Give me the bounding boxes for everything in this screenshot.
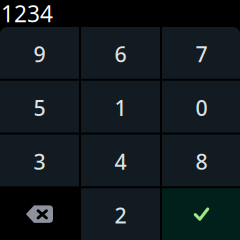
staticText: 8	[195, 147, 207, 175]
button[interactable]: Delete	[0, 188, 79, 240]
button[interactable]: 7	[162, 27, 240, 79]
staticText: 7	[195, 40, 207, 68]
staticText: 5	[33, 93, 45, 122]
button[interactable]: 8	[162, 134, 240, 186]
staticText: 1234	[1, 0, 53, 29]
button[interactable]: 6	[81, 27, 160, 79]
staticText: 6	[114, 40, 126, 68]
button[interactable]: 0	[162, 81, 240, 133]
staticText: 0	[195, 93, 207, 122]
button[interactable]: 4	[81, 134, 160, 186]
button[interactable]: Enter	[162, 188, 240, 240]
staticText: 4	[114, 147, 126, 175]
button[interactable]: 5	[0, 81, 79, 133]
button[interactable]: 3	[0, 134, 79, 186]
button[interactable]: 2	[81, 188, 160, 240]
staticText: 3	[33, 147, 45, 175]
button[interactable]: 1	[81, 81, 160, 133]
staticText: 9	[33, 40, 45, 68]
button[interactable]: 9	[0, 27, 79, 79]
staticText: 2	[114, 201, 126, 229]
staticText: 1	[114, 93, 126, 122]
